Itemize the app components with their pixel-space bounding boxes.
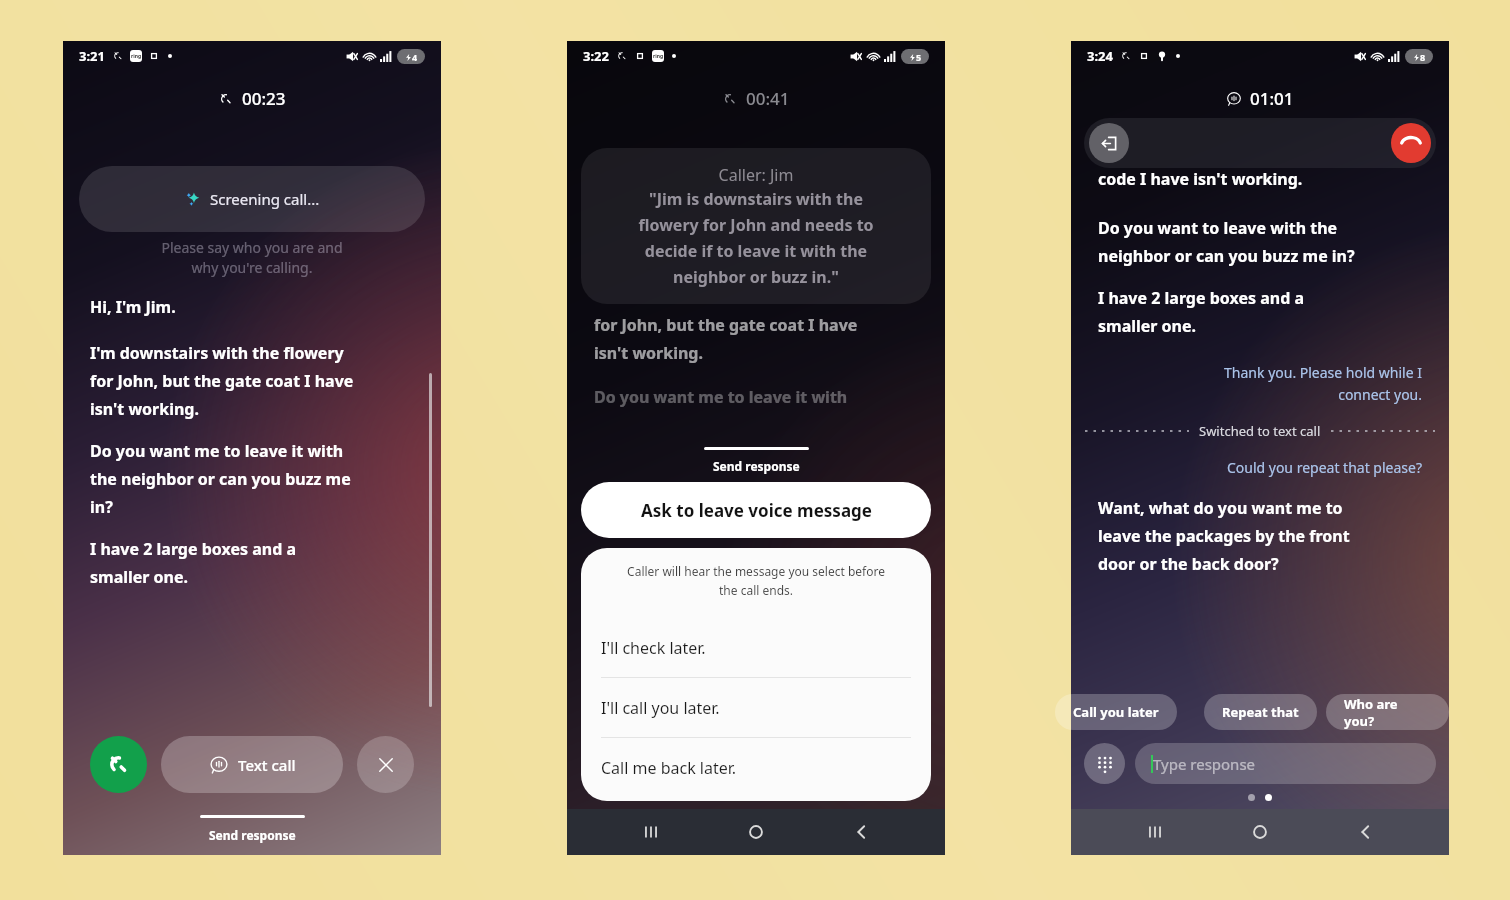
staticText: "Jim is downstairs with the flowery for … — [597, 188, 915, 288]
staticText: I'll check later. — [601, 637, 706, 659]
button[interactable]: I'll check later. — [581, 618, 931, 677]
staticText: 4 — [412, 51, 418, 63]
staticText: 01:01 — [1250, 87, 1294, 110]
staticText: 3:24 — [1087, 47, 1113, 65]
button[interactable]: Caller: Jim — [581, 148, 931, 304]
staticText: Screening call... — [210, 189, 320, 209]
staticText: for John, but the gate coat I have isn't… — [594, 314, 858, 364]
staticText: Ask to leave voice message — [641, 499, 872, 522]
staticText: 3:22 — [583, 47, 609, 65]
staticText: Call me back later. — [601, 757, 737, 779]
staticText: I have 2 large boxes and a smaller one. — [1098, 287, 1305, 337]
staticText: code I have isn't working. — [1098, 168, 1303, 190]
button[interactable]: Text call — [161, 736, 343, 793]
staticText: 5 — [916, 51, 922, 63]
button[interactable]: Exit text call — [1089, 123, 1129, 163]
staticText: ring — [131, 53, 142, 60]
staticText: ring — [653, 53, 664, 60]
button[interactable]: Call me back later. — [581, 738, 931, 797]
staticText: Call you later — [1073, 703, 1159, 721]
staticText: Thank you. Please hold while I connect y… — [1098, 363, 1422, 404]
staticText: 00:23 — [242, 87, 286, 110]
button[interactable]: Call you later — [1055, 694, 1177, 730]
button[interactable]: Home — [734, 810, 778, 854]
button[interactable]: Recents — [1133, 810, 1177, 854]
staticText: Switched to text call — [1199, 422, 1321, 440]
staticText: Type response — [1153, 754, 1256, 774]
staticText: 8 — [1420, 51, 1426, 63]
button[interactable]: Screening call... — [79, 166, 425, 232]
staticText: I'll call you later. — [601, 697, 720, 719]
button[interactable]: I'll call you later. — [581, 678, 931, 737]
button[interactable]: Recents — [629, 810, 673, 854]
button[interactable]: Dialpad — [1084, 743, 1125, 784]
button[interactable]: Home — [1238, 810, 1282, 854]
button[interactable]: Back — [1344, 810, 1388, 854]
button[interactable]: Answer call — [90, 736, 147, 793]
staticText: 3:21 — [79, 47, 105, 65]
staticText: Who are you? — [1344, 695, 1431, 730]
staticText: I'm downstairs with the flowery for John… — [90, 342, 354, 420]
staticText: Send response — [713, 458, 800, 474]
staticText: Want, what do you want me to leave the p… — [1098, 497, 1350, 575]
button[interactable]: Repeat that — [1204, 694, 1317, 730]
staticText: Send response — [209, 827, 296, 843]
staticText: Could you repeat that please? — [1098, 458, 1422, 477]
button[interactable]: Decline call — [357, 736, 414, 793]
staticText: Do you want me to leave it with the neig… — [90, 440, 351, 518]
button[interactable]: Ask to leave voice message — [581, 482, 931, 538]
button[interactable]: End call — [1391, 123, 1431, 163]
staticText: Hi, I'm Jim. — [90, 296, 176, 318]
button[interactable]: Who are you? — [1326, 694, 1449, 730]
staticText: I have 2 large boxes and a smaller one. — [90, 538, 297, 588]
staticText: Please say who you are and why you're ca… — [63, 238, 441, 278]
staticText: Repeat that — [1222, 703, 1299, 721]
staticText: Caller will hear the message you select … — [595, 563, 917, 598]
staticText: Do you want to leave with the neighbor o… — [1098, 217, 1355, 267]
button[interactable]: Back — [840, 810, 884, 854]
staticText: Do you want me to leave it with — [594, 386, 848, 408]
button[interactable]: Type response — [1135, 743, 1436, 784]
staticText: Caller: Jim — [597, 164, 915, 186]
staticText: 00:41 — [746, 87, 790, 110]
staticText: Text call — [238, 755, 296, 775]
